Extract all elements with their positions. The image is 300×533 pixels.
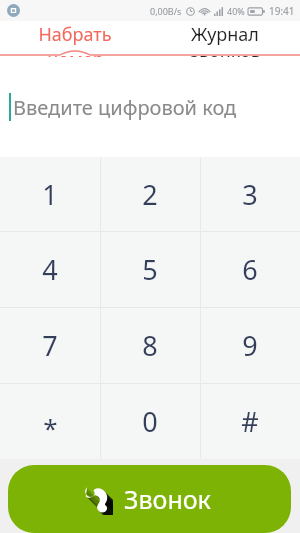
staticText: 2 [142,176,158,213]
staticText: 5 [142,251,158,288]
button[interactable]: Журнал [150,21,300,57]
button[interactable]: 2 [100,157,200,231]
button[interactable]: 0 [100,384,200,459]
button[interactable]: 7 [0,308,100,383]
staticText: Журнал [191,22,259,47]
staticText: * [43,410,58,445]
staticText: 8 [142,327,158,364]
button[interactable]: 4 [0,232,100,307]
staticText: 4 [42,251,58,288]
staticText: # [241,403,259,440]
staticText: номер [47,47,104,57]
staticText: Звонок [124,482,211,516]
staticText: 9 [242,327,258,364]
staticText: 0 [142,403,158,440]
staticText: 0,00B/s [150,5,182,17]
button[interactable]: * [0,384,100,459]
button[interactable]: # [200,384,300,459]
staticText: 40% [227,5,245,17]
button[interactable]: 1 [0,157,100,231]
staticText: Введите цифровой код [13,94,237,121]
staticText: звонков [190,47,261,57]
button[interactable]: 6 [200,232,300,307]
staticText: 19:41 [269,4,295,18]
button[interactable]: Набрать [0,21,150,57]
button[interactable]: 5 [100,232,200,307]
button[interactable]: 8 [100,308,200,383]
staticText: 1 [42,176,58,213]
button[interactable]: Звонок [8,465,291,533]
other: App notification [7,4,20,17]
staticText: 6 [242,251,258,288]
staticText: Набрать [38,22,112,47]
button[interactable]: 3 [200,157,300,231]
button[interactable]: Введите цифровой код [0,57,300,157]
staticText: 3 [242,176,258,213]
button[interactable]: 9 [200,308,300,383]
staticText: 7 [42,327,58,364]
